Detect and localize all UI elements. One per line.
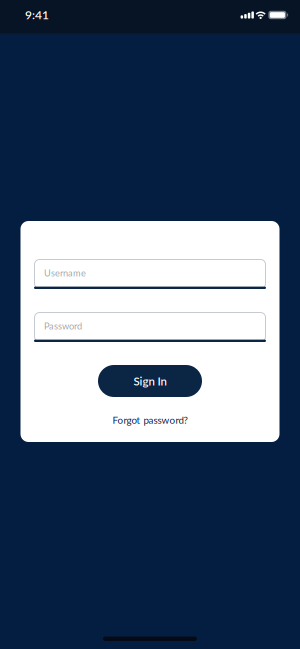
- staticText: Forgot password?: [112, 414, 187, 426]
- staticText: Username: [44, 267, 86, 278]
- staticText: 9:41: [25, 7, 49, 22]
- staticText: Sign In: [133, 374, 166, 388]
- staticText: Password: [44, 320, 82, 331]
